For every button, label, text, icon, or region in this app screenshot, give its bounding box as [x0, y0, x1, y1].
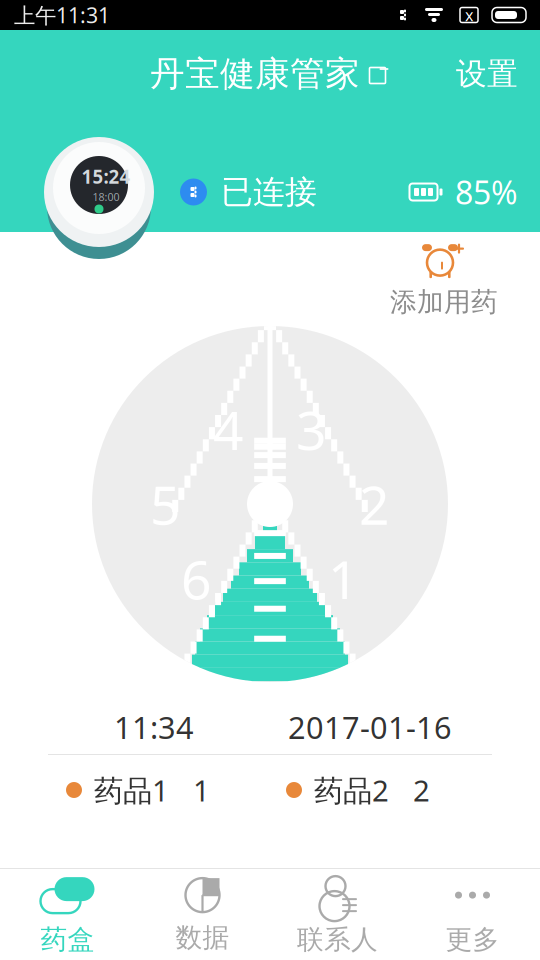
staticText: 已连接 [221, 172, 317, 212]
staticText: 15:24 [81, 164, 130, 189]
staticText: 数据 [175, 921, 229, 954]
staticText: 2017-01-16 [288, 707, 452, 747]
staticText: 3 [296, 394, 327, 465]
button[interactable]: 丹宝健康管家 [140, 47, 400, 101]
staticText: 设置 [456, 55, 518, 93]
staticText: 1 [328, 543, 359, 614]
button[interactable]: 设置 [434, 43, 540, 105]
staticText: x [465, 4, 473, 26]
staticText: 添加用药 [390, 286, 498, 318]
staticText: 药品1 [94, 770, 169, 809]
button[interactable]: 联系人 [270, 869, 405, 960]
button[interactable]: 添加用药 [380, 236, 508, 322]
staticText: 2 [359, 469, 390, 539]
staticText: 药盒 [40, 923, 94, 956]
staticText: 丹宝健康管家 [150, 53, 360, 95]
staticText: 药品2 [314, 770, 389, 809]
button[interactable]: 更多 [405, 869, 540, 960]
button[interactable]: 药盒 [0, 869, 135, 960]
button[interactable]: 数据 [135, 869, 270, 960]
staticText: 6 [181, 543, 212, 614]
staticText: 更多 [445, 923, 499, 956]
staticText: 5 [150, 469, 181, 539]
staticText: 85% [455, 171, 518, 213]
staticText: 11:34 [114, 707, 194, 747]
staticText: 联系人 [297, 923, 378, 956]
staticText: 18:00 [92, 190, 119, 204]
staticText: 1 [193, 770, 210, 809]
staticText: 4 [213, 394, 244, 465]
staticText: 上午11:31 [14, 1, 110, 29]
staticText: 2 [413, 770, 430, 809]
